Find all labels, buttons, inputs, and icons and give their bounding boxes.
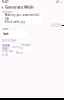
- staticText: 42/200: [51, 24, 62, 27]
- staticText: 9:41: [2, 0, 9, 4]
- staticText: ‹: [1, 3, 3, 11]
- staticText: Select Style: [2, 39, 17, 42]
- staticText: filled with joy: [4, 20, 24, 24]
- button[interactable]: Short: [15, 50, 24, 55]
- staticText: Heartfelt: [21, 43, 32, 51]
- staticText: Message: [2, 10, 13, 13]
- staticText: Generate Wish: [5, 4, 34, 10]
- button[interactable]: Romantic: [2, 44, 10, 49]
- staticText: Short: [16, 51, 23, 55]
- button[interactable]: Inspirational: [2, 50, 14, 55]
- staticText: ıll ⌁: [56, 0, 62, 4]
- staticText: Inspirational: [2, 49, 14, 57]
- staticText: Sarah: [3, 32, 9, 36]
- button[interactable]: Funny: [11, 44, 20, 49]
- staticText: Funny: [11, 45, 19, 49]
- button[interactable]: Back: [1, 4, 4, 9]
- staticText: Romantic: [2, 43, 10, 51]
- staticText: Wishing you a wonderful day: [4, 13, 39, 20]
- staticText: Name: [2, 27, 9, 31]
- button[interactable]: Heartfelt: [21, 44, 32, 49]
